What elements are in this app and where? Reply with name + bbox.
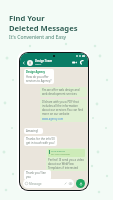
button[interactable]: Voice message — [76, 179, 85, 188]
staticText: Design Agency — [26, 70, 46, 74]
button[interactable]: Video call — [72, 60, 77, 65]
staticText: Message — [29, 182, 42, 186]
staticText: Ill share with you a PDF that includes a… — [42, 100, 85, 116]
button[interactable]: Call — [80, 60, 85, 65]
button[interactable]: Thank you! See you — [24, 170, 51, 180]
staticText: Find Your Deleted Messages — [9, 13, 78, 33]
staticText: Design Team — [35, 59, 53, 63]
staticText: online — [35, 63, 42, 66]
staticText: Perfect! Ill send you a video about our … — [48, 158, 85, 170]
staticText: for your message — [51, 153, 70, 156]
button[interactable]: Thanks for the info! Ill get in touch wi… — [24, 136, 57, 146]
button[interactable]: Message — [23, 179, 74, 188]
button[interactable]: Amazing! — [24, 128, 43, 134]
button[interactable]: Back — [20, 58, 88, 67]
staticText: Ill be waiting — [51, 150, 65, 153]
staticText: Thanks for the info! Ill get in touch wi… — [26, 137, 55, 145]
staticText: Amazing! — [26, 129, 39, 133]
staticText: www.agency.com — [42, 117, 64, 121]
button[interactable]: Yes we offer web design and web developm… — [40, 87, 87, 97]
staticText: How do you offer services to Agency? — [26, 75, 52, 83]
staticText: It's Convenient and Easy — [9, 34, 67, 41]
button[interactable]: Ill be waiting — [46, 148, 87, 171]
button[interactable]: Design Agency — [24, 69, 54, 84]
button[interactable]: Ill share with you a PDF that includes a… — [40, 99, 87, 122]
staticText: Thank you! See you — [26, 171, 49, 179]
other: Back — [22, 61, 26, 65]
staticText: Yes we offer web design and web developm… — [42, 88, 85, 96]
